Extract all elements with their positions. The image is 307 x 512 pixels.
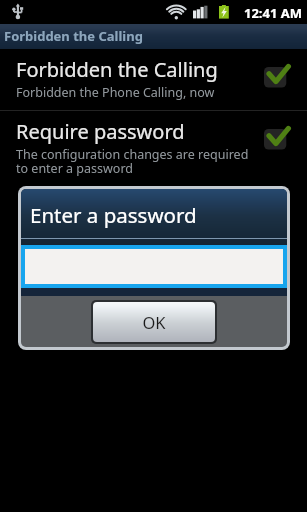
other: USB connected [12, 3, 24, 20]
button[interactable]: OK [93, 302, 215, 342]
button[interactable]: Require password [0, 111, 307, 187]
staticText: Require password [16, 118, 185, 145]
button[interactable]: Toggle setting [264, 127, 294, 151]
button[interactable]: Toggle setting [264, 65, 294, 89]
staticText: Forbidden the Calling [16, 56, 218, 83]
button[interactable]: Forbidden the Calling [0, 49, 307, 110]
staticText: OK [142, 311, 166, 333]
staticText: 12:41 AM [244, 4, 303, 22]
staticText: The configuration changes are required t… [16, 146, 249, 177]
staticText: Forbidden the Calling [4, 27, 143, 45]
staticText: Enter a password [30, 201, 197, 229]
staticText: Forbidden the Phone Calling, now [16, 84, 215, 101]
